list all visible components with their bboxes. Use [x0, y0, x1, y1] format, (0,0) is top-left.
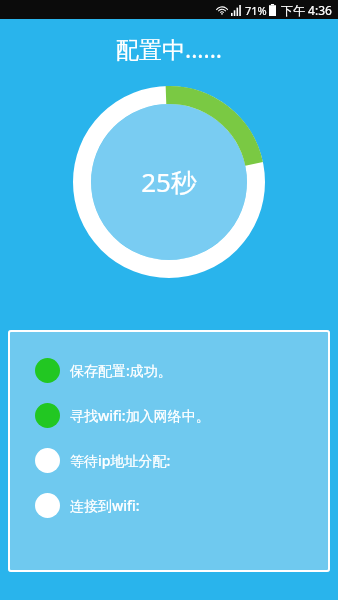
- button[interactable]: 保存配置:成功。: [8, 358, 330, 383]
- button[interactable]: 等待ip地址分配:: [8, 448, 330, 473]
- staticText: 等待ip地址分配:: [70, 451, 171, 470]
- other: Wi-Fi signal: [216, 4, 228, 16]
- staticText: 配置中......: [0, 33, 338, 64]
- other: Cellular signal: [231, 5, 242, 16]
- other: Battery 71 percent: [269, 4, 276, 16]
- staticText: 寻找wifi:加入网络中。: [70, 406, 210, 425]
- staticText: 连接到wifi:: [70, 496, 140, 515]
- staticText: 保存配置:成功。: [70, 361, 172, 380]
- staticText: 下午 4:36: [281, 2, 332, 18]
- button[interactable]: 连接到wifi:: [8, 493, 330, 518]
- staticText: 71%: [245, 3, 267, 18]
- staticText: 25秒: [141, 164, 197, 200]
- button[interactable]: 寻找wifi:加入网络中。: [8, 403, 330, 428]
